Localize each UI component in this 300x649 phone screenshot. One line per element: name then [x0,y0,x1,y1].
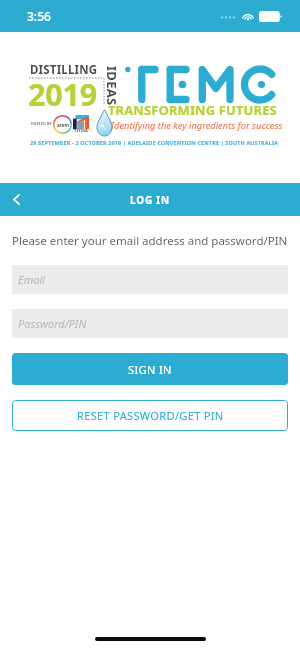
staticText: LOG IN [130,193,170,207]
staticText: IDEAS [103,66,121,106]
staticText: atem [57,122,69,128]
button[interactable]: SIGN IN [12,353,288,385]
staticText: RESET PASSWORD/GET PIN [77,408,224,423]
button[interactable]: Back [0,183,33,216]
staticText: Password/PIN [18,316,87,331]
staticText: TRANSFORMING FUTURES [108,101,277,119]
staticText: Email [18,272,46,287]
staticText: Identifying the key ingredients for succ… [111,119,283,132]
button[interactable]: RESET PASSWORD/GET PIN [12,400,288,431]
staticText: Please enter your email address and pass… [12,233,288,249]
staticText: TEFMA [74,128,88,134]
staticText: 29 SEPTEMBER - 2 OCTOBER 2019 | ADELAIDE… [30,139,279,146]
staticText: 2019 [28,73,97,115]
staticText: HOSTED BY [31,121,52,125]
staticText: DISTILLING [30,62,98,78]
staticText: 3:56 [27,8,51,24]
button[interactable]: Password/PIN [12,309,288,338]
button[interactable]: Email [12,265,288,294]
staticText: SIGN IN [128,362,172,377]
